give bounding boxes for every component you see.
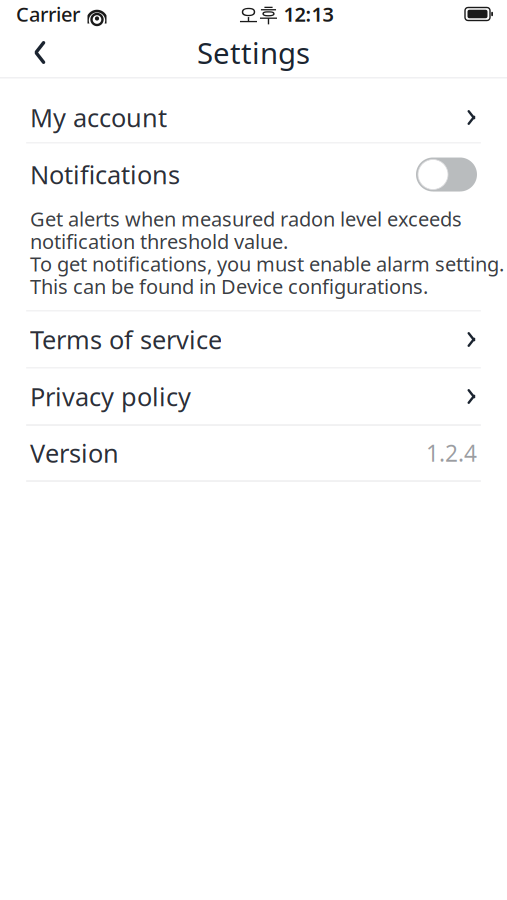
staticText: Settings [197, 33, 310, 72]
button[interactable]: Privacy policy [0, 368, 507, 424]
staticText: Get alerts when measured radon level exc… [30, 205, 462, 232]
staticText: 오후 12:13 [238, 1, 333, 27]
staticText: Privacy policy [30, 380, 191, 413]
button[interactable]: Back [16, 30, 64, 74]
staticText: 1.2.4 [426, 438, 477, 468]
button[interactable]: Terms of service [0, 311, 507, 367]
staticText: To get notifications, you must enable al… [30, 250, 504, 277]
staticText: Terms of service [30, 323, 222, 356]
staticText: notification threshold value. [30, 228, 288, 255]
staticText: Version [30, 436, 119, 470]
staticText: Carrier [16, 1, 80, 27]
button[interactable]: Notifications [0, 143, 507, 205]
staticText: My account [30, 101, 167, 134]
staticText: Notifications [30, 158, 180, 191]
button[interactable]: My account [0, 92, 507, 142]
staticText: This can be found in Device configuratio… [30, 273, 428, 300]
